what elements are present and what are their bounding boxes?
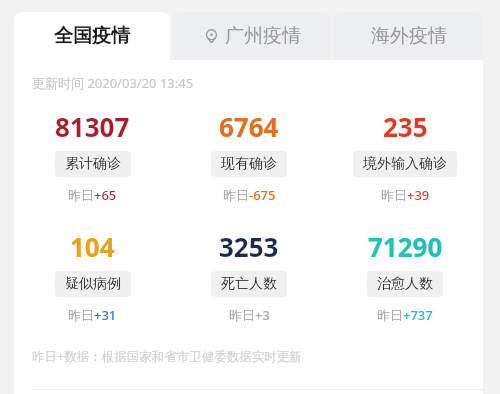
button[interactable]: 71290 xyxy=(327,227,483,326)
staticText: 昨日+39 xyxy=(381,186,430,204)
button[interactable]: 全国疫情 xyxy=(14,12,170,60)
staticText: 71290 xyxy=(368,229,443,264)
staticText: 累计确诊 xyxy=(65,155,121,173)
staticText: 昨日+3 xyxy=(229,306,270,324)
staticText: 疑似病例 xyxy=(65,275,121,293)
staticText: 海外疫情 xyxy=(371,24,447,48)
staticText: 现有确诊 xyxy=(221,155,277,173)
button[interactable]: 81307 xyxy=(14,107,171,206)
staticText: 广州疫情 xyxy=(225,24,301,48)
staticText: 更新时间 2020/03/20 13:45 xyxy=(32,74,194,92)
staticText: 81307 xyxy=(55,109,130,144)
staticText: 104 xyxy=(70,229,115,264)
staticText: 3253 xyxy=(219,229,279,264)
staticText: 全国疫情 xyxy=(54,24,130,48)
staticText: 昨日+31 xyxy=(68,306,117,324)
staticText: 死亡人数 xyxy=(221,275,277,293)
other: Location xyxy=(204,29,219,44)
button[interactable]: 海外疫情 xyxy=(334,12,483,60)
button[interactable]: 104 xyxy=(14,227,171,326)
staticText: 昨日+数据：根据国家和省市卫健委数据实时更新 xyxy=(32,348,302,365)
staticText: 昨日+65 xyxy=(68,186,117,204)
button[interactable]: Location xyxy=(174,12,330,60)
staticText: 境外输入确诊 xyxy=(363,155,447,173)
staticText: 治愈人数 xyxy=(377,275,433,293)
staticText: 235 xyxy=(383,109,428,144)
button[interactable]: 235 xyxy=(327,107,483,206)
staticText: 昨日-675 xyxy=(223,186,276,204)
staticText: 6764 xyxy=(219,109,279,144)
button[interactable]: 3253 xyxy=(171,227,327,326)
button[interactable]: 6764 xyxy=(171,107,327,206)
staticText: 昨日+737 xyxy=(377,306,433,324)
